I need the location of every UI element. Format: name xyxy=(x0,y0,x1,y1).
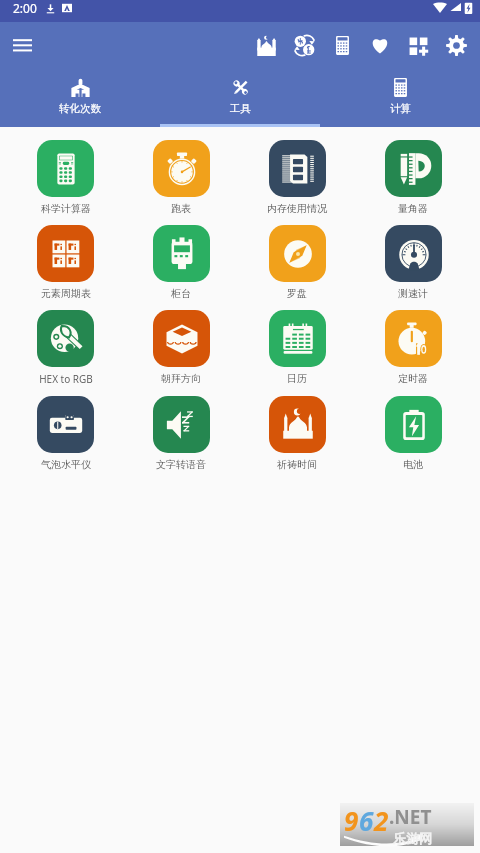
button[interactable]: Mosque xyxy=(247,26,285,64)
staticText: 6 xyxy=(359,803,374,838)
button[interactable]: Favorites xyxy=(361,26,399,64)
staticText: 计算 xyxy=(390,102,411,115)
staticText: 9 xyxy=(344,803,359,838)
button[interactable]: HEX to RGB xyxy=(8,310,123,386)
staticText: .NET xyxy=(389,804,432,830)
button[interactable]: 定时器 xyxy=(355,310,471,385)
button[interactable]: Add widget xyxy=(399,26,437,64)
button[interactable]: 计算 xyxy=(320,67,480,115)
staticText: 罗盘 xyxy=(287,287,307,300)
button[interactable]: Settings xyxy=(437,26,475,64)
staticText: 元素周期表 xyxy=(41,287,91,300)
button[interactable]: 跑表 xyxy=(123,140,239,215)
staticText: 内存使用情况 xyxy=(267,202,327,215)
staticText: 转化次数 xyxy=(59,102,101,115)
button[interactable]: 内存使用情况 xyxy=(239,140,355,215)
button[interactable]: 罗盘 xyxy=(239,225,355,300)
button[interactable]: 电池 xyxy=(355,396,471,471)
staticText: 跑表 xyxy=(171,202,191,215)
button[interactable]: 文字转语音 xyxy=(123,396,239,471)
button[interactable]: 科学计算器 xyxy=(8,140,123,215)
button[interactable]: Calculator xyxy=(323,26,361,64)
staticText: 科学计算器 xyxy=(41,202,91,215)
staticText: 工具 xyxy=(230,102,251,115)
staticText: HEX to RGB xyxy=(39,372,93,386)
staticText: 量角器 xyxy=(398,202,428,215)
staticText: 定时器 xyxy=(398,372,428,385)
button[interactable]: Currency converter xyxy=(285,26,323,64)
staticText: 朝拜方向 xyxy=(161,372,201,385)
staticText: 测速计 xyxy=(398,287,428,300)
staticText: 2 xyxy=(374,803,389,838)
button[interactable]: 日历 xyxy=(239,310,355,385)
button[interactable]: 工具 xyxy=(160,67,320,115)
staticText: 乐游网 xyxy=(393,830,432,846)
button[interactable]: Menu xyxy=(0,22,45,67)
staticText: 电池 xyxy=(403,458,423,471)
staticText: 柜台 xyxy=(171,287,191,300)
button[interactable]: 元素周期表 xyxy=(8,225,123,300)
button[interactable]: 转化次数 xyxy=(0,67,160,115)
button[interactable]: 量角器 xyxy=(355,140,471,215)
button[interactable]: 祈祷时间 xyxy=(239,396,355,471)
staticText: 日历 xyxy=(287,372,307,385)
staticText: 2:00 xyxy=(13,0,37,16)
button[interactable]: 柜台 xyxy=(123,225,239,300)
button[interactable]: 气泡水平仪 xyxy=(8,396,123,471)
staticText: 文字转语音 xyxy=(156,458,206,471)
staticText: 气泡水平仪 xyxy=(41,458,91,471)
button[interactable]: 测速计 xyxy=(355,225,471,300)
staticText: 祈祷时间 xyxy=(277,458,317,471)
button[interactable]: 朝拜方向 xyxy=(123,310,239,385)
